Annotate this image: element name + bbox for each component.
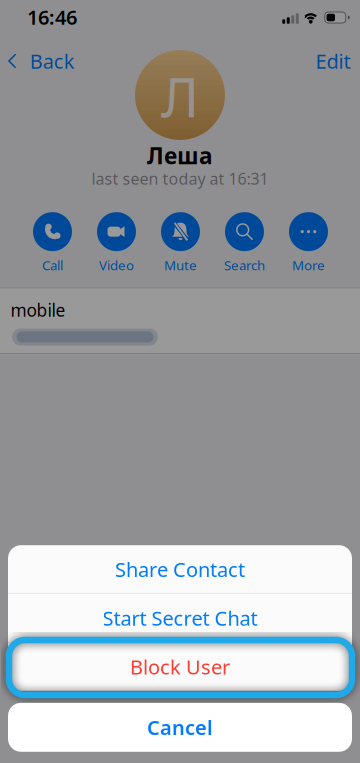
button[interactable]: Share Contact [8,545,352,593]
staticText: last seen today at 16:31 [91,168,268,189]
staticText: Л [161,60,199,132]
button[interactable]: Edit [315,48,350,74]
staticText: Back [30,48,75,74]
button[interactable]: Video [88,212,144,274]
staticText: Mute [164,256,197,274]
staticText: Search [224,256,265,274]
staticText: Cancel [147,714,213,741]
staticText: Video [99,256,134,274]
button[interactable]: Block User [8,643,352,691]
button[interactable]: Start Secret Chat [8,594,352,642]
staticText: Edit [315,48,350,74]
staticText: Share Contact [115,556,245,582]
staticText: Леша [147,140,213,170]
staticText: Call [42,256,63,274]
button[interactable]: Cancel [8,703,352,752]
button[interactable]: Mute [152,212,208,274]
button[interactable]: Call [24,212,80,274]
staticText: mobile [10,298,65,321]
button[interactable]: Search [216,212,272,274]
staticText: More [292,256,325,274]
staticText: 16:46 [27,4,77,30]
button[interactable]: More [280,212,336,274]
button[interactable]: Back [1,48,75,74]
staticText: Start Secret Chat [102,605,257,631]
staticText: Block User [130,653,230,680]
